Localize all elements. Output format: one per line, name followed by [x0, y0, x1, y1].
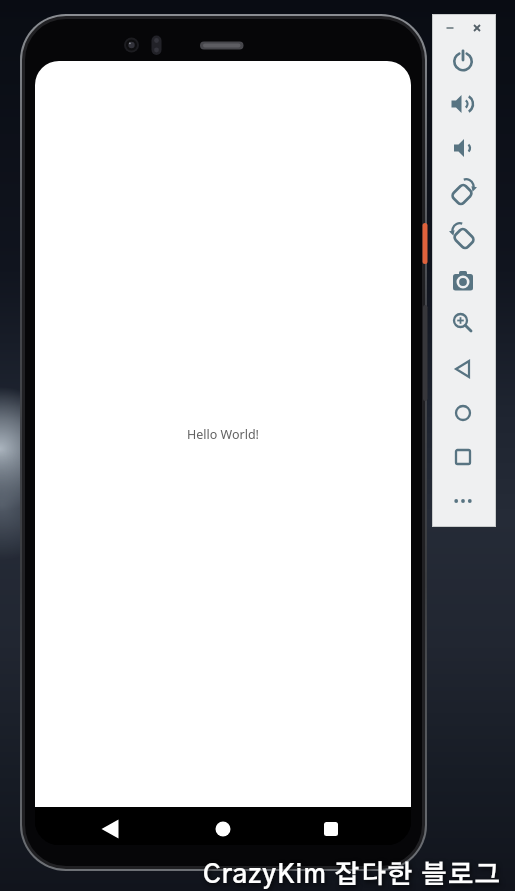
button[interactable]: [445, 439, 481, 475]
button[interactable]: [205, 811, 241, 845]
button[interactable]: [445, 351, 481, 387]
button[interactable]: [445, 174, 481, 210]
button[interactable]: [445, 395, 481, 431]
button[interactable]: [445, 218, 481, 254]
staticText: CrazyKim 잡다한 블로그: [203, 862, 502, 888]
button[interactable]: [445, 305, 481, 341]
button[interactable]: Hello World!: [187, 426, 259, 443]
button[interactable]: [445, 483, 481, 519]
button[interactable]: [445, 43, 481, 79]
button[interactable]: [445, 130, 481, 166]
button[interactable]: [469, 20, 485, 36]
button[interactable]: [93, 811, 129, 845]
staticText: Hello World!: [187, 426, 259, 443]
button[interactable]: [313, 811, 349, 845]
button[interactable]: [445, 86, 481, 122]
button[interactable]: [445, 263, 481, 299]
button[interactable]: [442, 20, 458, 36]
